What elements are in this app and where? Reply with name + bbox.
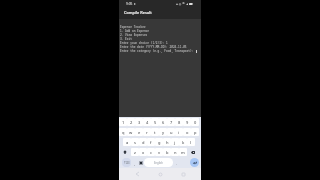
button[interactable]: s [131,138,139,146]
staticText: y [162,130,165,135]
button[interactable]: Recents [178,169,188,179]
staticText: m [181,150,185,155]
button[interactable]: k [179,138,187,146]
button[interactable]: 1 [119,118,127,126]
button[interactable]: 9 [183,118,191,126]
staticText: c [150,150,152,155]
staticText: Enter your choice (1/2/3): 1 [120,41,168,45]
staticText: 3 [138,120,141,125]
staticText: , [134,161,135,166]
button[interactable]: q [119,128,127,136]
button[interactable]: 8 [175,118,183,126]
button[interactable]: 6 [159,118,167,126]
staticText: j [174,140,176,145]
staticText: 9:05 [126,2,133,6]
staticText: u [170,130,173,135]
button[interactable]: b [163,148,171,156]
staticText: v [158,150,161,155]
button[interactable]: i [175,128,183,136]
staticText: z [134,150,136,155]
staticText: p [194,130,197,135]
button[interactable]: d [139,138,147,146]
staticText: b [166,150,169,155]
staticText: x [142,150,145,155]
staticText: 4 [146,120,149,125]
button[interactable]: h [163,138,171,146]
button[interactable]: v [155,148,163,156]
button[interactable]: 5 [151,118,159,126]
staticText: d [142,140,145,145]
button[interactable]: Backspace [187,147,199,157]
staticText: 8 [178,120,181,125]
button[interactable]: , [131,159,137,167]
staticText: 1. Add an Expense [120,29,150,33]
button[interactable]: m [179,148,187,156]
button[interactable]: w [127,128,135,136]
staticText: Expense Tracker [120,25,146,29]
button[interactable]: p [191,128,199,136]
button[interactable]: 0 [191,118,199,126]
button[interactable]: z [131,148,139,156]
button[interactable]: Shift [119,147,131,157]
staticText: r [146,130,148,135]
staticText: e [138,130,141,135]
button[interactable]: y [159,128,167,136]
button[interactable]: e [135,128,143,136]
button[interactable]: 3 [135,118,143,126]
staticText: 5 [154,120,157,125]
staticText: . [176,161,177,166]
staticText: Enter the date (YYYY-MM-DD): 2024-11-05 [120,45,187,49]
staticText: 1 [122,120,125,125]
staticText: g [158,140,161,145]
button[interactable]: u [167,128,175,136]
button[interactable]: 7 [167,118,175,126]
button[interactable]: f [147,138,155,146]
staticText: 3. Exit [120,37,132,41]
button[interactable]: Emoji [137,159,144,167]
staticText: 9 [186,120,189,125]
button[interactable]: 4 [143,118,151,126]
staticText: i [178,130,180,135]
button[interactable]: Back [132,169,142,179]
button[interactable]: j [171,138,179,146]
button[interactable]: o [183,128,191,136]
staticText: English [154,161,163,165]
button[interactable]: English [144,158,173,167]
button[interactable]: ?123 [122,158,131,167]
button[interactable]: l [187,138,195,146]
button[interactable]: . [173,159,179,167]
staticText: o [186,130,189,135]
staticText: q [122,130,125,135]
staticText: n [174,150,177,155]
button[interactable]: x [139,148,147,156]
staticText: h [166,140,169,145]
button[interactable]: n [171,148,179,156]
staticText: Enter the category (e.g., Food, Transpor… [120,49,196,53]
button[interactable]: t [151,128,159,136]
staticText: 6 [162,120,165,125]
staticText: t [154,130,156,135]
staticText: k [182,140,185,145]
button[interactable]: Home [155,169,165,179]
staticText: l [190,140,192,145]
staticText: s [134,140,136,145]
button[interactable]: g [155,138,163,146]
button[interactable]: Enter [190,158,199,167]
staticText: 0 [194,120,197,125]
staticText: ?123 [124,161,130,165]
staticText: Compile Result [124,10,152,15]
staticText: w [129,130,133,135]
staticText: a [126,140,129,145]
staticText: 2 [130,120,133,125]
button[interactable]: a [123,138,131,146]
button[interactable]: 2 [127,118,135,126]
staticText: f [150,140,152,145]
button[interactable]: r [143,128,151,136]
staticText: 7 [170,120,173,125]
button[interactable]: c [147,148,155,156]
staticText: 2. View Expenses [120,33,148,37]
